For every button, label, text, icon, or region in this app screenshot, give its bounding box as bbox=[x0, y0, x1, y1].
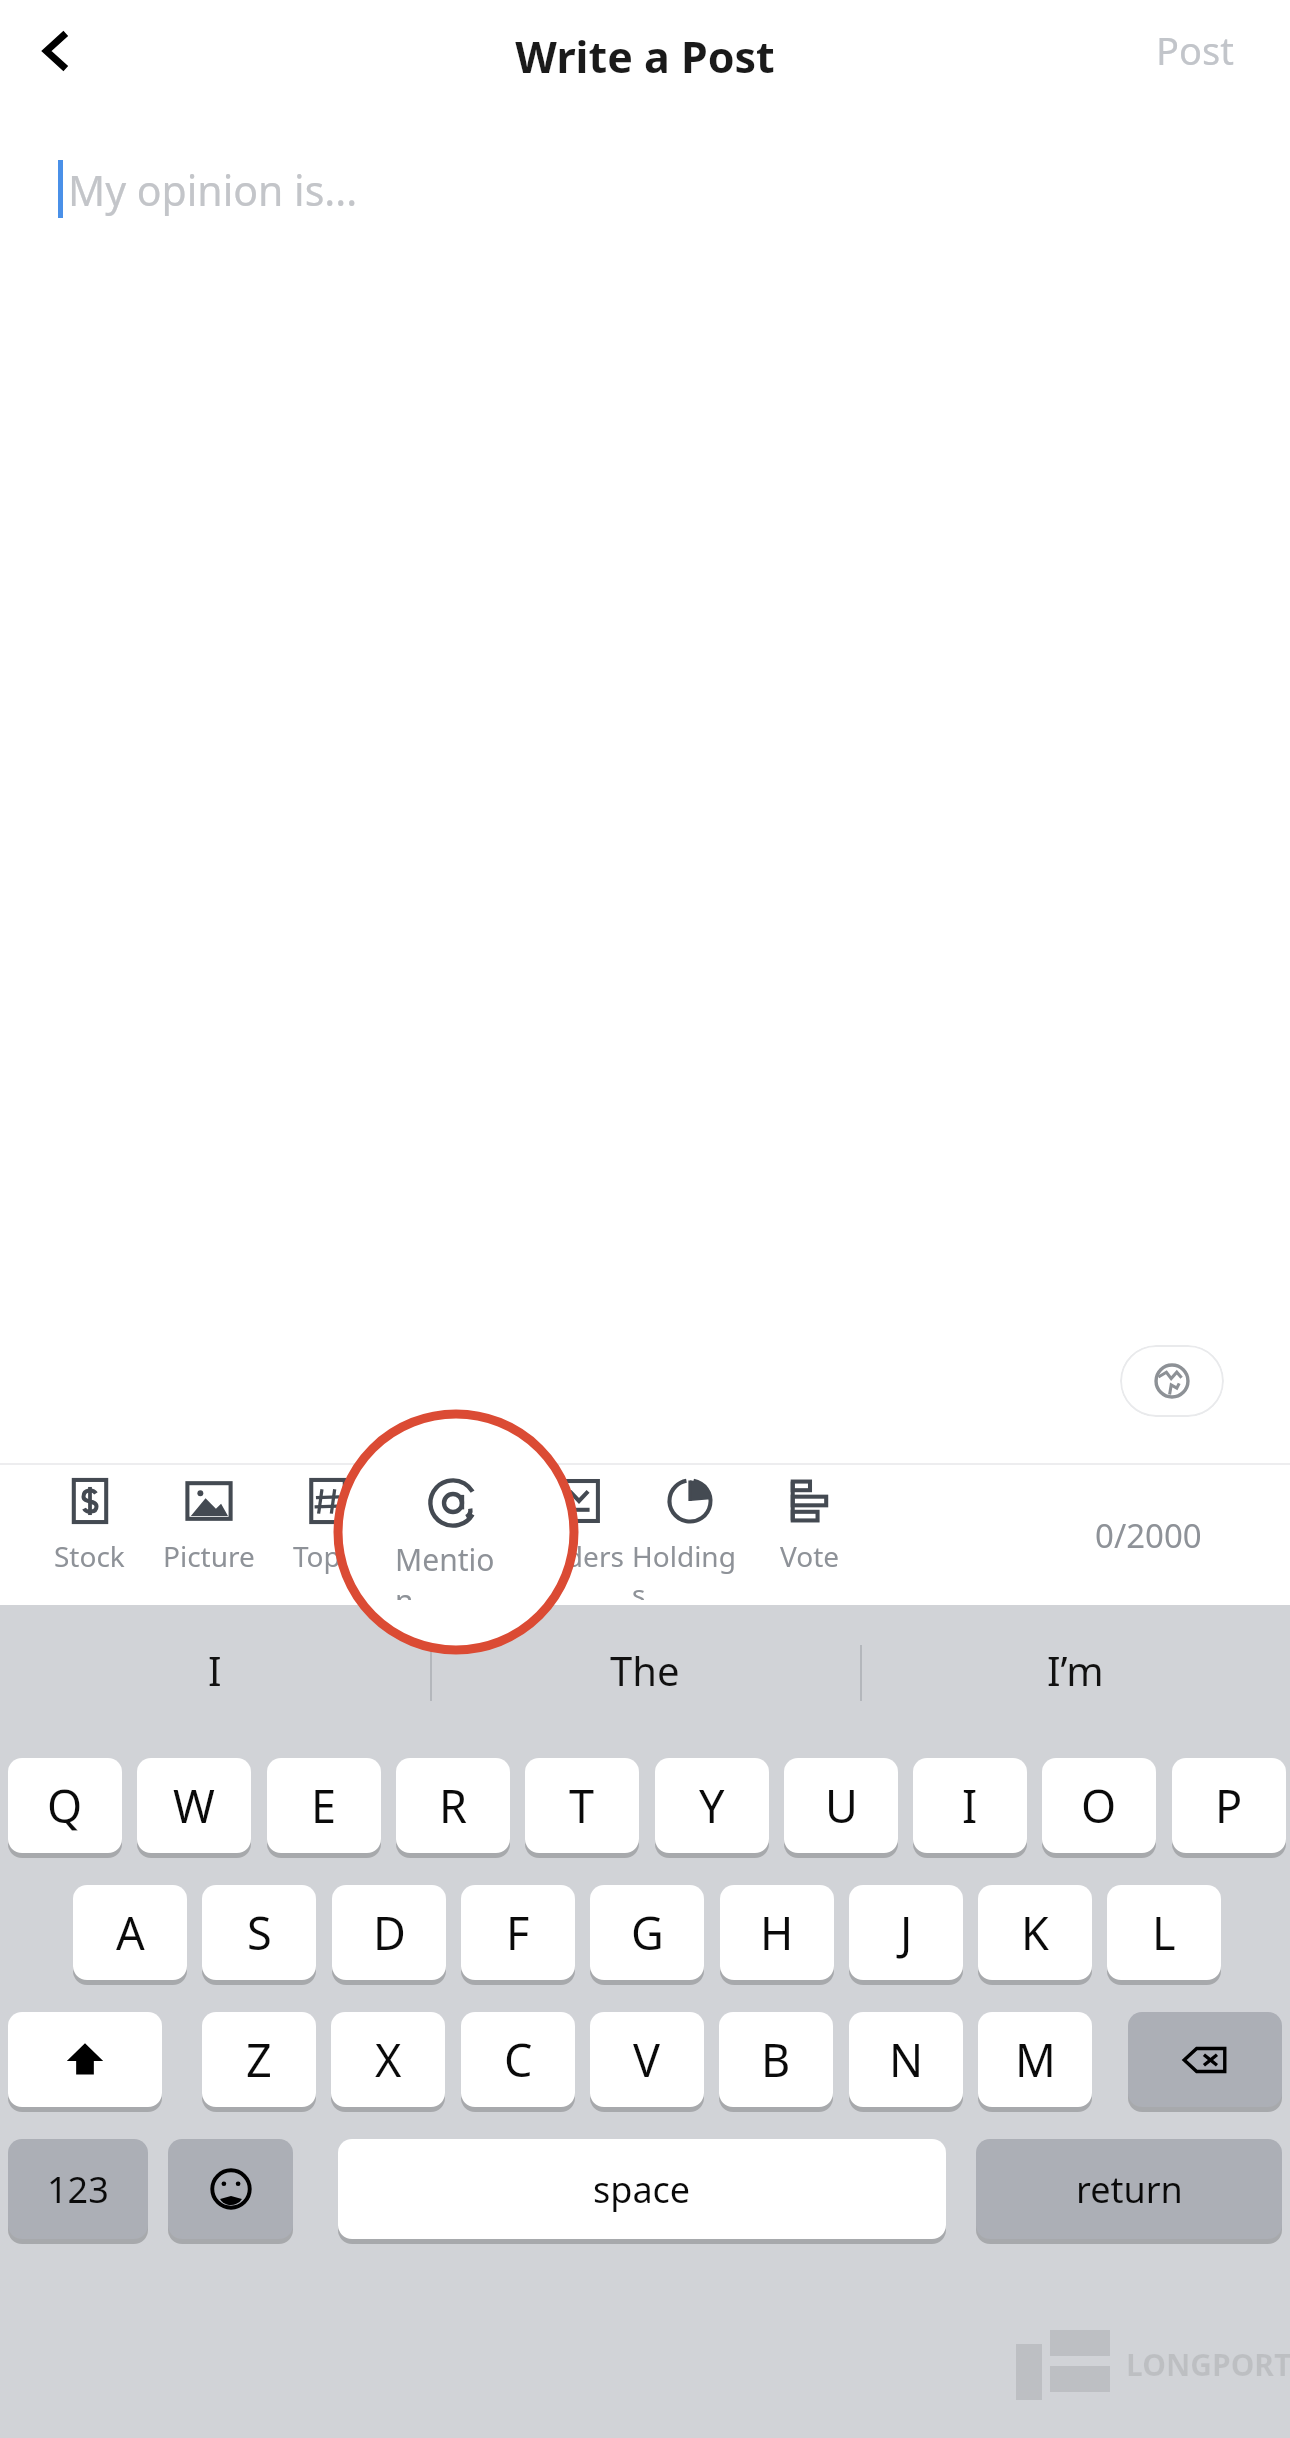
staticText: I bbox=[962, 1775, 978, 1836]
staticText: Z bbox=[246, 2029, 272, 2090]
staticText: B bbox=[761, 2029, 791, 2090]
staticText: space bbox=[593, 2165, 691, 2214]
staticText: O bbox=[1081, 1775, 1117, 1836]
button[interactable]: E bbox=[267, 1758, 381, 1853]
staticText: Vote bbox=[780, 1537, 840, 1575]
staticText: 123 bbox=[47, 2165, 109, 2214]
button[interactable]: The bbox=[445, 1615, 845, 1725]
button[interactable]: Mention bbox=[395, 1474, 511, 1600]
button[interactable]: D bbox=[332, 1885, 446, 1980]
staticText: S bbox=[247, 1902, 272, 1963]
staticText: M bbox=[1015, 2029, 1056, 2090]
button[interactable]: Stock bbox=[31, 1474, 147, 1600]
button[interactable]: I’m bbox=[875, 1615, 1275, 1725]
button[interactable]: H bbox=[720, 1885, 834, 1980]
staticText: Picture bbox=[163, 1537, 255, 1575]
staticText: G bbox=[631, 1902, 664, 1963]
staticText: Stock bbox=[54, 1537, 125, 1575]
staticText: Y bbox=[699, 1775, 725, 1836]
button[interactable]: W bbox=[137, 1758, 251, 1853]
button[interactable]: T bbox=[525, 1758, 639, 1853]
staticText: C bbox=[504, 2029, 533, 2090]
button[interactable]: Topic bbox=[269, 1474, 385, 1600]
button[interactable]: space bbox=[338, 2139, 946, 2239]
staticText: Q bbox=[47, 1775, 83, 1836]
button[interactable]: O bbox=[1042, 1758, 1156, 1853]
button[interactable]: P bbox=[1172, 1758, 1286, 1853]
button[interactable]: Holdings bbox=[632, 1474, 748, 1600]
staticText: return bbox=[1076, 2165, 1183, 2214]
staticText: Mention bbox=[395, 1539, 511, 1600]
button[interactable]: Picture bbox=[151, 1474, 267, 1600]
button[interactable]: C bbox=[461, 2012, 575, 2107]
staticText: T bbox=[569, 1775, 595, 1836]
button[interactable]: Mention bbox=[395, 1474, 511, 1600]
button[interactable]: X bbox=[331, 2012, 445, 2107]
staticText: Post bbox=[1156, 24, 1234, 76]
staticText: D bbox=[373, 1902, 406, 1963]
staticText: A bbox=[116, 1902, 145, 1963]
button[interactable]: Delete bbox=[1128, 2012, 1282, 2107]
button[interactable]: Back bbox=[14, 8, 100, 94]
button[interactable]: M bbox=[978, 2012, 1092, 2107]
staticText: J bbox=[900, 1902, 913, 1963]
staticText: L bbox=[1152, 1902, 1176, 1963]
button[interactable]: I bbox=[15, 1615, 415, 1725]
staticText: U bbox=[825, 1775, 858, 1836]
staticText: I’m bbox=[1047, 1643, 1104, 1697]
button[interactable]: A bbox=[73, 1885, 187, 1980]
button[interactable]: Q bbox=[8, 1758, 122, 1853]
button[interactable]: F bbox=[461, 1885, 575, 1980]
staticText: R bbox=[439, 1775, 467, 1836]
button[interactable]: I bbox=[913, 1758, 1027, 1853]
button[interactable]: Z bbox=[202, 2012, 316, 2107]
staticText: Topic bbox=[293, 1537, 362, 1575]
staticText: E bbox=[311, 1775, 337, 1836]
button[interactable]: Visibility bbox=[1120, 1345, 1224, 1417]
staticText: Orders bbox=[533, 1537, 624, 1575]
button[interactable]: G bbox=[590, 1885, 704, 1980]
staticText: LONGPORT bbox=[1126, 2344, 1290, 2385]
button[interactable]: K bbox=[978, 1885, 1092, 1980]
staticText: Mention bbox=[398, 1537, 509, 1575]
button[interactable]: R bbox=[396, 1758, 510, 1853]
staticText: 0/2000 bbox=[1095, 1513, 1202, 1558]
button[interactable]: U bbox=[784, 1758, 898, 1853]
button[interactable]: Post bbox=[1130, 10, 1260, 90]
staticText: My opinion is... bbox=[68, 162, 358, 218]
button[interactable]: S bbox=[202, 1885, 316, 1980]
staticText: P bbox=[1215, 1775, 1243, 1836]
button[interactable]: L bbox=[1107, 1885, 1221, 1980]
button[interactable]: J bbox=[849, 1885, 963, 1980]
staticText: K bbox=[1021, 1902, 1049, 1963]
staticText: I bbox=[208, 1643, 222, 1697]
staticText: V bbox=[633, 2029, 661, 2090]
staticText: X bbox=[375, 2029, 402, 2090]
button[interactable]: Orders bbox=[520, 1474, 636, 1600]
button[interactable]: Vote bbox=[752, 1474, 868, 1600]
staticText: The bbox=[610, 1643, 680, 1697]
button[interactable]: V bbox=[590, 2012, 704, 2107]
button[interactable]: B bbox=[719, 2012, 833, 2107]
staticText: W bbox=[173, 1775, 215, 1836]
staticText: H bbox=[760, 1902, 794, 1963]
staticText: Holdings bbox=[632, 1537, 748, 1600]
button[interactable]: return bbox=[976, 2139, 1282, 2239]
button[interactable]: N bbox=[849, 2012, 963, 2107]
staticText: F bbox=[506, 1902, 530, 1963]
staticText: N bbox=[889, 2029, 924, 2090]
button[interactable]: 123 bbox=[8, 2139, 148, 2239]
button[interactable]: Y bbox=[655, 1758, 769, 1853]
button[interactable]: Emoji bbox=[168, 2139, 293, 2239]
button[interactable]: Shift bbox=[8, 2012, 162, 2107]
staticText: Write a Post bbox=[0, 27, 1290, 86]
